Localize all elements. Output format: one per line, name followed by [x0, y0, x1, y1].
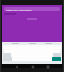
- button[interactable]: Back: [15, 65, 18, 68]
- button[interactable]: Home: [31, 65, 34, 68]
- staticText: Digite uma mensagem: [6, 8, 32, 11]
- button[interactable]: Digite uma mensagem: [4, 7, 60, 11]
- button[interactable]: Recents: [46, 65, 49, 68]
- button[interactable]: Enter: [52, 57, 61, 61]
